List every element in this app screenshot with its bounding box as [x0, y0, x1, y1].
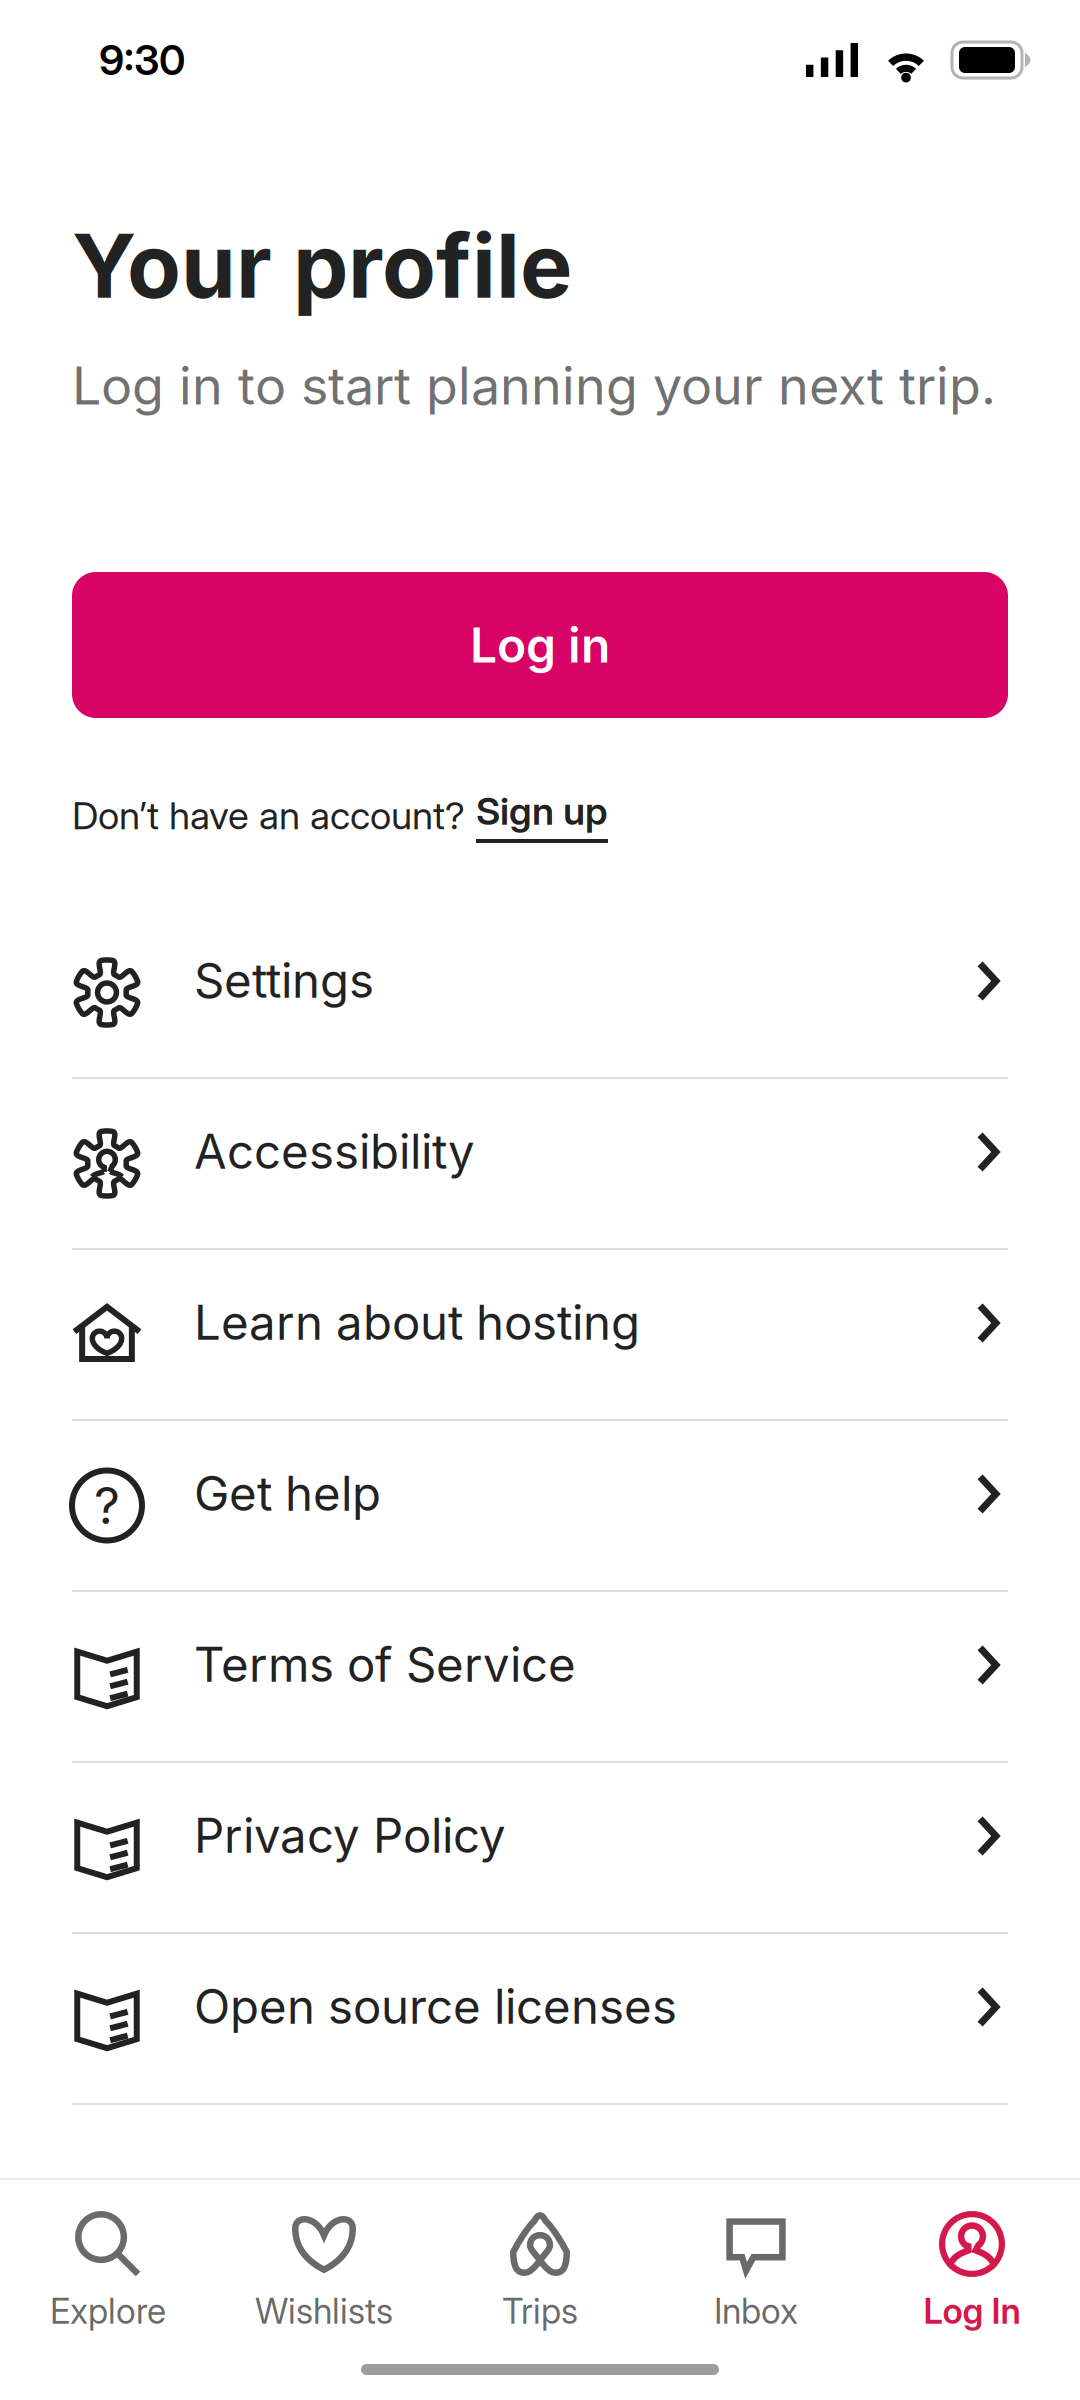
staticText: Wishlists	[255, 2290, 393, 2332]
staticText: Accessibility	[194, 1123, 475, 1180]
button[interactable]: Wishlists	[216, 2211, 432, 2332]
staticText: Don’t have an account?	[72, 792, 465, 838]
staticText: Terms of Service	[194, 1636, 576, 1693]
staticText: Explore	[50, 2290, 166, 2332]
staticText: Settings	[194, 952, 374, 1009]
button[interactable]: Trips	[432, 2211, 648, 2332]
staticText: Trips	[502, 2290, 578, 2332]
staticText: Log in	[470, 616, 610, 674]
staticText: Privacy Policy	[194, 1807, 506, 1864]
button[interactable]: Log in	[72, 572, 1008, 718]
staticText: Inbox	[714, 2290, 798, 2332]
staticText: Log In	[923, 2290, 1020, 2332]
staticText: Open source licenses	[194, 1978, 677, 2035]
button[interactable]: Privacy Policy	[0, 1763, 1080, 1934]
button[interactable]: Accessibility	[0, 1079, 1080, 1250]
staticText: Sign up	[476, 788, 608, 834]
button[interactable]: Sign up	[476, 788, 608, 843]
button[interactable]: Settings	[0, 908, 1080, 1079]
staticText: Log in to start planning your next trip.	[72, 354, 996, 417]
button[interactable]: Open source licenses	[0, 1934, 1080, 2105]
button[interactable]: ?	[0, 1421, 1080, 1592]
staticText: Learn about hosting	[194, 1294, 640, 1351]
button[interactable]: Inbox	[648, 2211, 864, 2332]
staticText: Your profile	[72, 212, 572, 319]
button[interactable]: Log In	[864, 2211, 1080, 2332]
button[interactable]: Explore	[0, 2211, 216, 2332]
button[interactable]: Terms of Service	[0, 1592, 1080, 1763]
staticText: 9:30	[99, 35, 185, 85]
button[interactable]: Learn about hosting	[0, 1250, 1080, 1421]
staticText: Get help	[194, 1465, 381, 1522]
staticText: ?	[94, 1475, 120, 1536]
